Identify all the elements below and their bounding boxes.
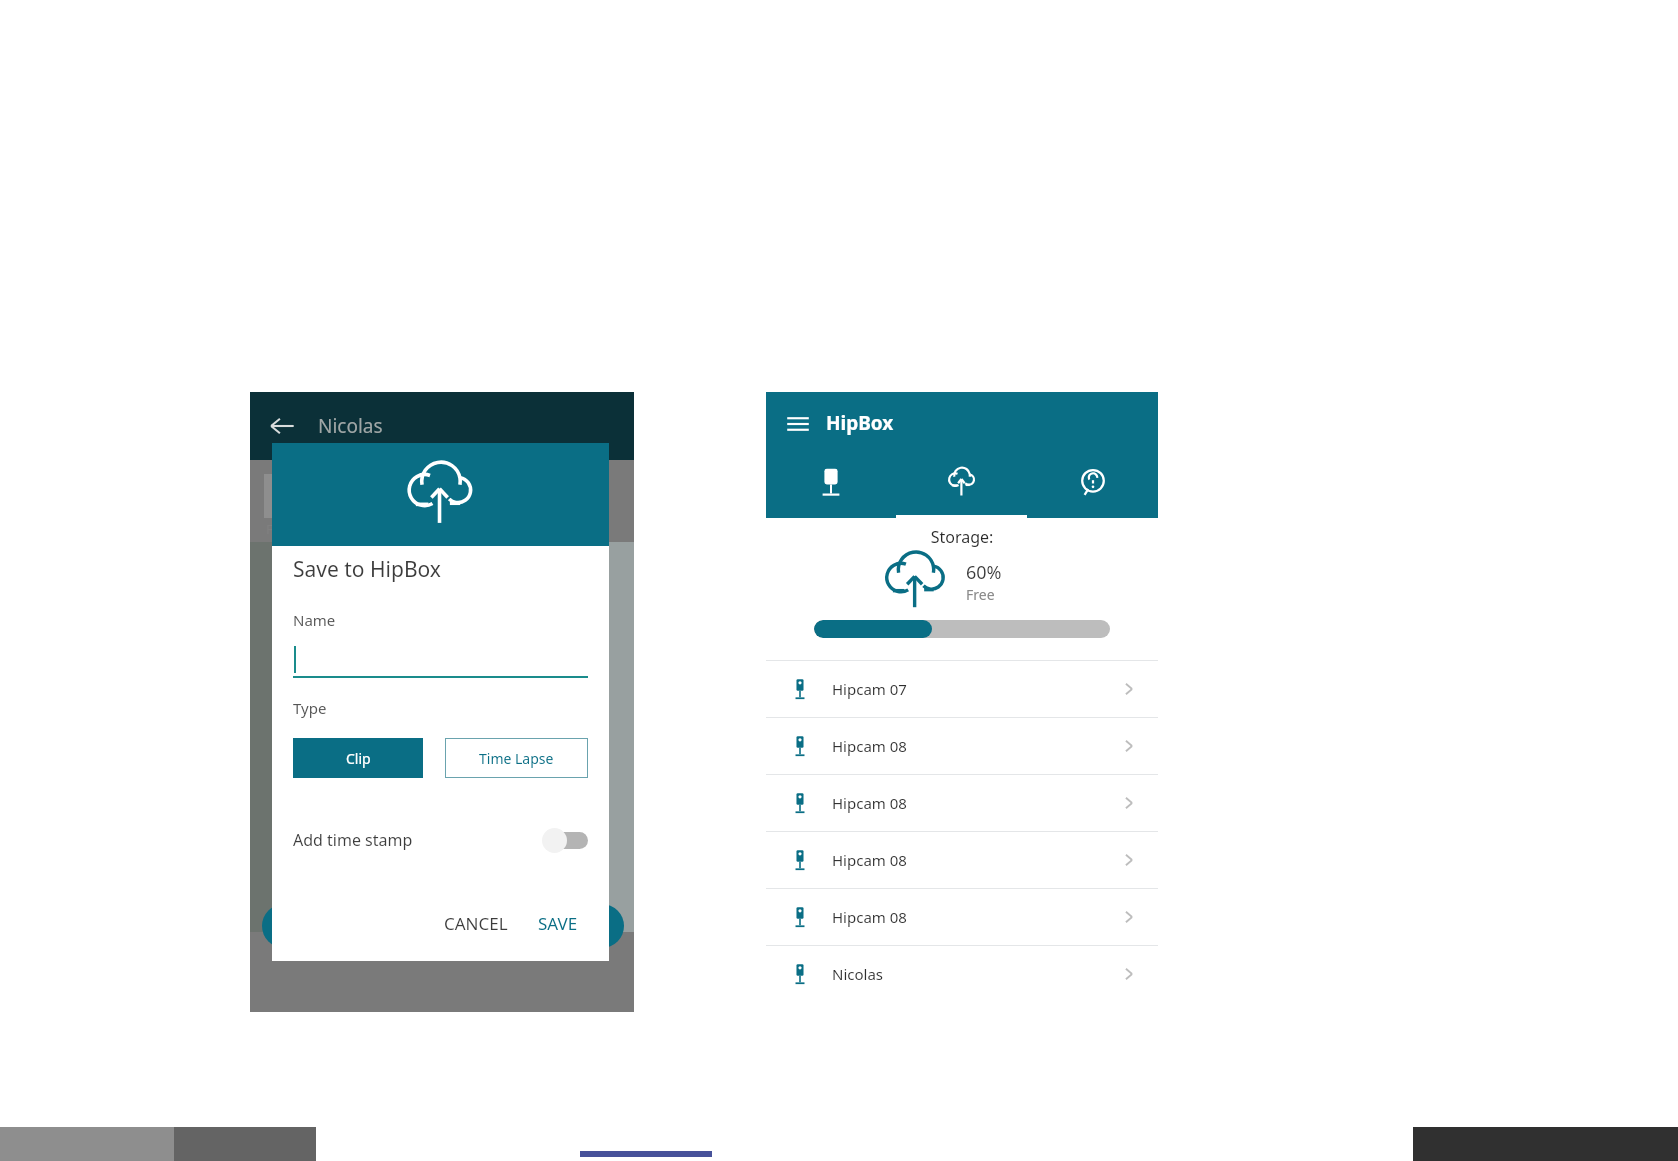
button[interactable]: Add time stamp [293, 822, 588, 858]
staticText: CANCEL [444, 912, 508, 935]
button[interactable]: Hipcam 07 [766, 661, 1158, 717]
staticText: F [266, 520, 273, 538]
staticText: Type [293, 698, 327, 718]
staticText: Save to HipBox [293, 555, 441, 584]
staticText: Time Lapse [479, 749, 554, 768]
button[interactable]: Hipcam 08 [766, 775, 1158, 831]
staticText: 60% [966, 560, 1002, 585]
button[interactable]: SAVE [528, 904, 588, 943]
button[interactable]: Hipcam 08 [766, 832, 1158, 888]
button[interactable]: Nicolas [766, 946, 1158, 1002]
staticText: Hipcam 08 [832, 736, 907, 756]
button[interactable]: Help [1027, 452, 1158, 512]
staticText: HipBox [826, 410, 894, 436]
button[interactable]: Hipcam 08 [766, 718, 1158, 774]
staticText: Hipcam 08 [832, 850, 907, 870]
button[interactable]: Time Lapse [445, 738, 588, 778]
staticText: Name [293, 610, 336, 630]
button[interactable]: Back [260, 404, 304, 448]
staticText: Free [966, 585, 995, 604]
button[interactable]: Menu [778, 404, 818, 444]
staticText: Hipcam 08 [832, 793, 907, 813]
button[interactable]: Hipcam 08 [766, 889, 1158, 945]
staticText: SAVE [538, 912, 578, 935]
button[interactable]: Clip [293, 738, 423, 778]
button[interactable]: CANCEL [432, 904, 520, 943]
staticText: Add time stamp [293, 829, 413, 851]
staticText: Hipcam 08 [832, 907, 907, 927]
staticText: Hipcam 07 [832, 679, 907, 699]
staticText: Nicolas [832, 964, 884, 984]
staticText: Storage: [766, 526, 1158, 548]
staticText: Nicolas [318, 413, 383, 439]
button[interactable]: Cameras [766, 452, 896, 512]
button[interactable]: Cloud [896, 452, 1027, 512]
staticText: Clip [346, 749, 371, 768]
